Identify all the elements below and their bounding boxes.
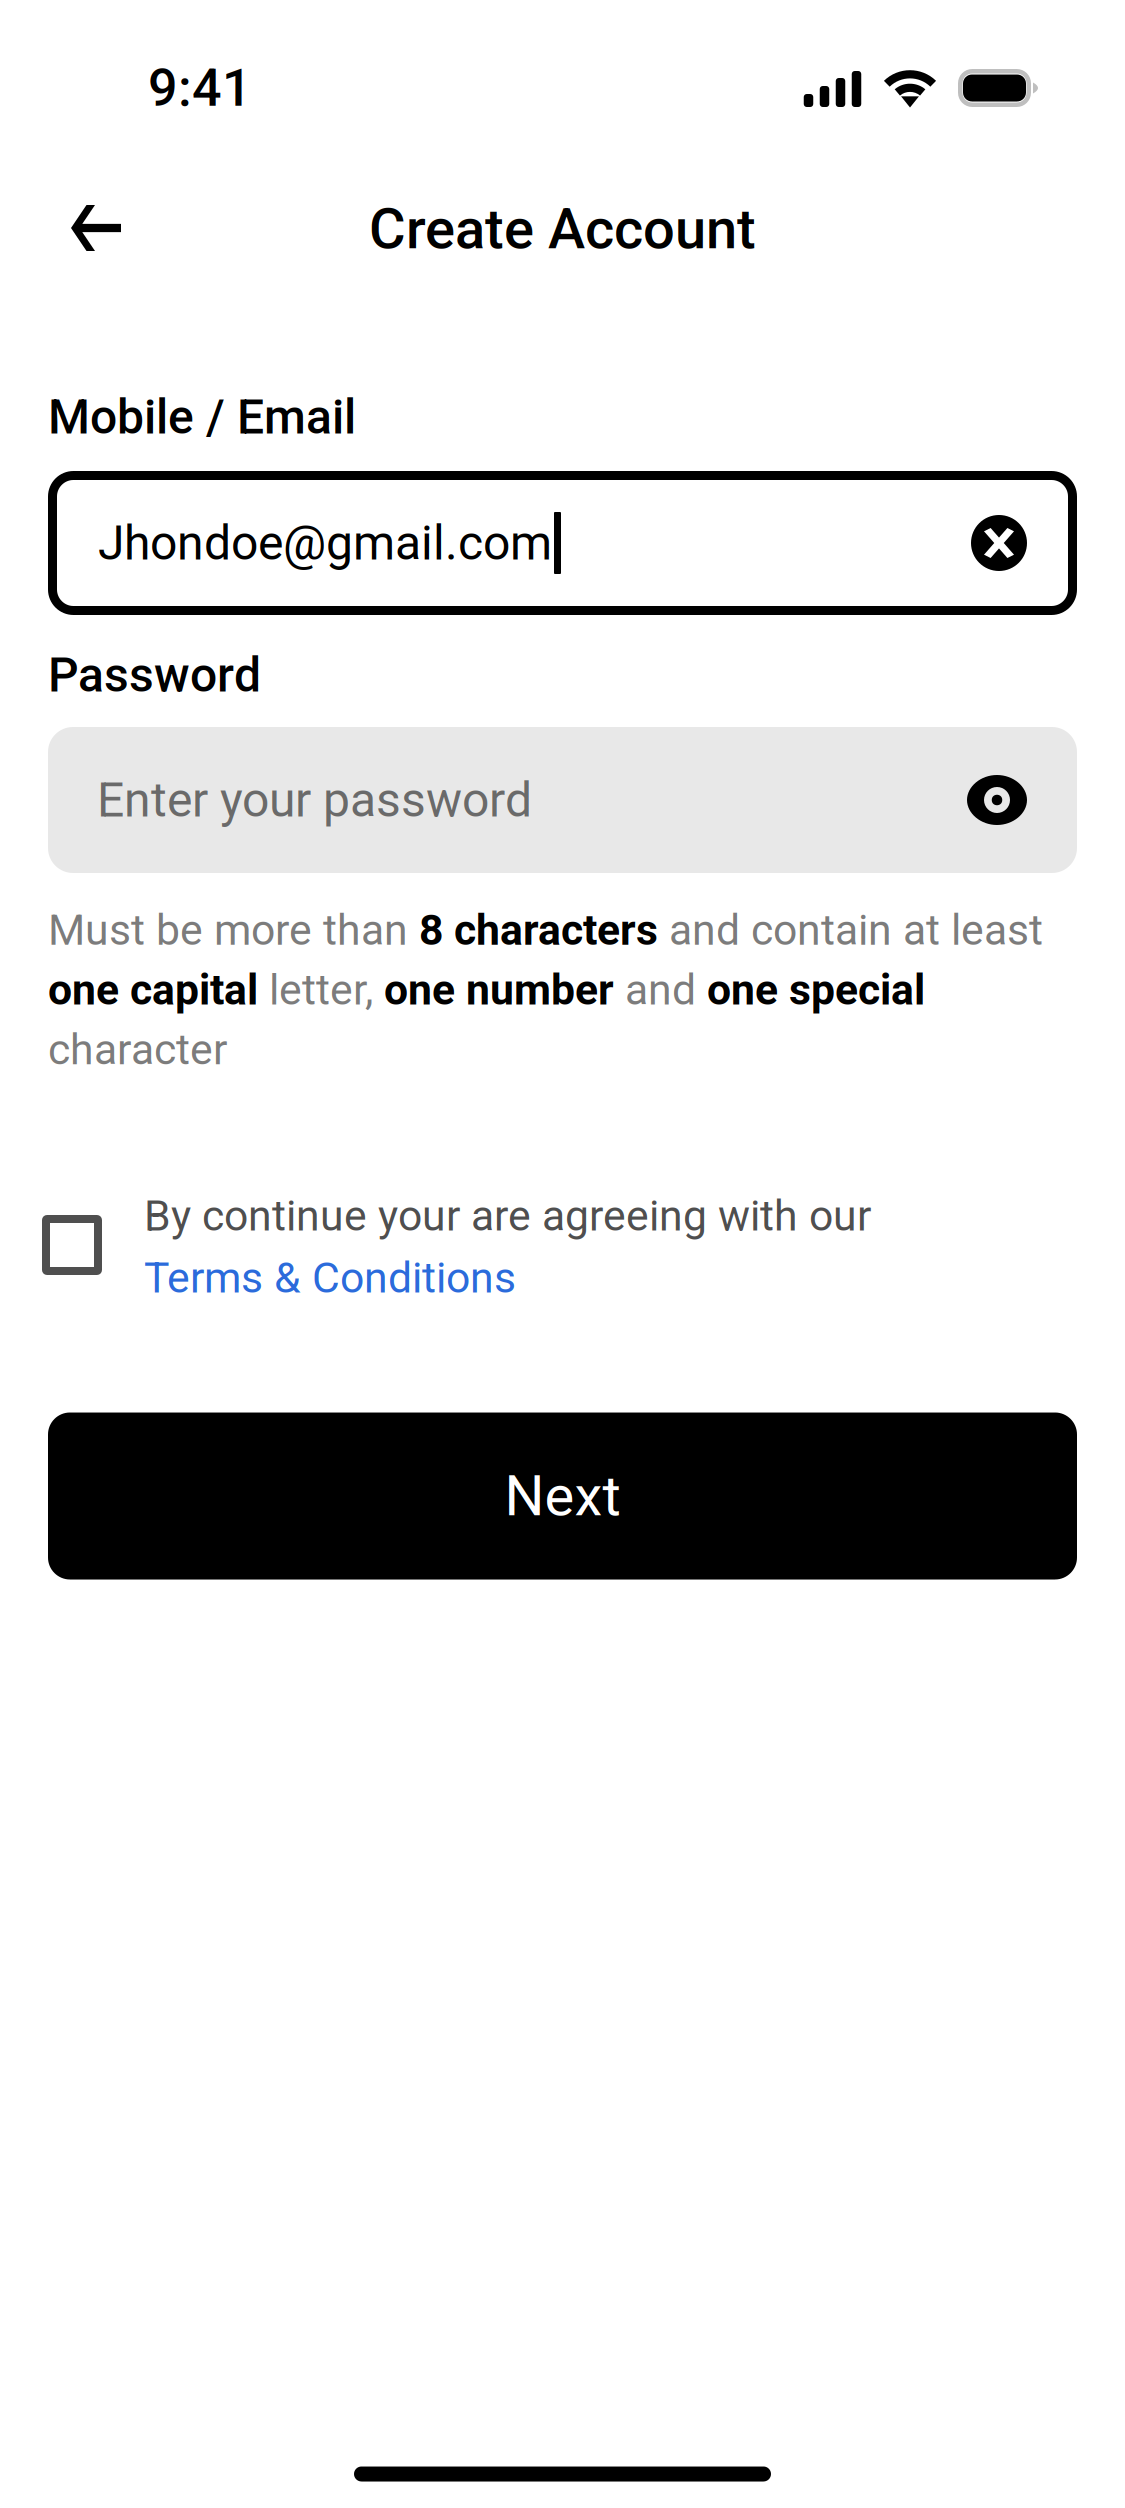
button[interactable]: Next bbox=[48, 1412, 1077, 1579]
button[interactable]: Back bbox=[31, 168, 161, 288]
staticText: Enter your password bbox=[97, 772, 532, 828]
staticText: Password bbox=[48, 647, 261, 703]
staticText: Must be more than 8 characters and conta… bbox=[48, 906, 1043, 1074]
staticText: Mobile / Email bbox=[48, 389, 356, 445]
staticText: Terms & Conditions bbox=[144, 1253, 516, 1303]
staticText: Next bbox=[504, 1463, 620, 1529]
staticText: Create Account bbox=[369, 196, 756, 262]
button[interactable]: Show password bbox=[949, 752, 1045, 848]
staticText: 9:41 bbox=[148, 57, 252, 118]
button[interactable]: Terms & Conditions bbox=[144, 1253, 516, 1303]
button[interactable]: Agree to terms and conditions bbox=[17, 1190, 127, 1300]
staticText: Jhondoe@gmail.com bbox=[98, 515, 552, 571]
staticText: By continue your are agreeing with our bbox=[144, 1191, 871, 1241]
button[interactable]: Clear text bbox=[951, 495, 1047, 591]
